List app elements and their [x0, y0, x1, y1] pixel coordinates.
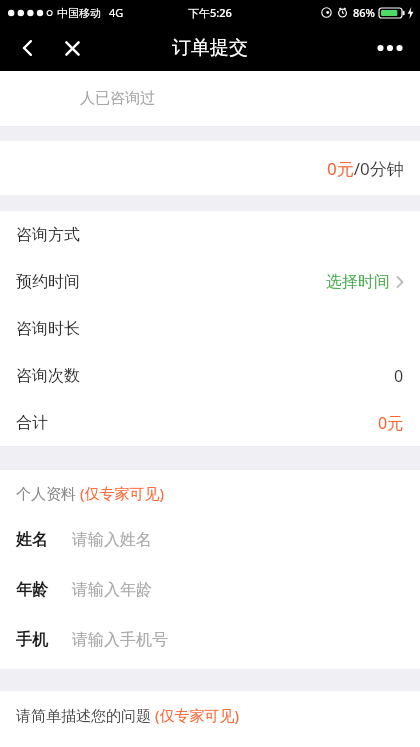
staticText: 中国移动: [57, 6, 101, 20]
staticText: 咨询次数: [16, 366, 80, 386]
button[interactable]: 合计: [0, 399, 420, 446]
button[interactable]: Close: [52, 28, 92, 68]
staticText: 咨询时长: [16, 319, 80, 339]
staticText: 0元/0分钟: [327, 157, 404, 180]
staticText: 预约时间: [16, 272, 80, 292]
button[interactable]: 手机: [0, 615, 420, 665]
staticText: 咨询方式: [16, 225, 80, 245]
staticText: 选择时间: [326, 272, 390, 292]
button[interactable]: Back: [8, 28, 48, 68]
button[interactable]: 0元/0分钟: [0, 141, 420, 195]
staticText: 人已咨询过: [80, 89, 155, 108]
staticText: 86%: [353, 5, 375, 20]
button[interactable]: 预约时间: [0, 258, 420, 305]
staticText: 请输入手机号: [72, 630, 168, 650]
staticText: 0元: [378, 412, 404, 434]
staticText: 下午5:26: [188, 5, 232, 20]
staticText: 请简单描述您的问题 (仅专家可见): [16, 705, 239, 725]
button[interactable]: 年龄: [0, 565, 420, 615]
button[interactable]: 姓名: [0, 515, 420, 565]
button[interactable]: 咨询次数: [0, 352, 420, 399]
staticText: 0: [394, 365, 404, 387]
button[interactable]: More options: [366, 26, 414, 70]
staticText: 4G: [109, 5, 124, 20]
staticText: 请输入年龄: [72, 580, 152, 600]
button[interactable]: 咨询方式: [0, 211, 420, 258]
staticText: 合计: [16, 413, 48, 433]
staticText: 个人资料 (仅专家可见): [16, 483, 164, 503]
staticText: 订单提交: [172, 36, 248, 60]
staticText: 手机: [16, 630, 48, 650]
staticText: 姓名: [16, 530, 48, 550]
button[interactable]: 咨询时长: [0, 305, 420, 352]
staticText: 年龄: [16, 580, 48, 600]
staticText: 请输入姓名: [72, 530, 152, 550]
